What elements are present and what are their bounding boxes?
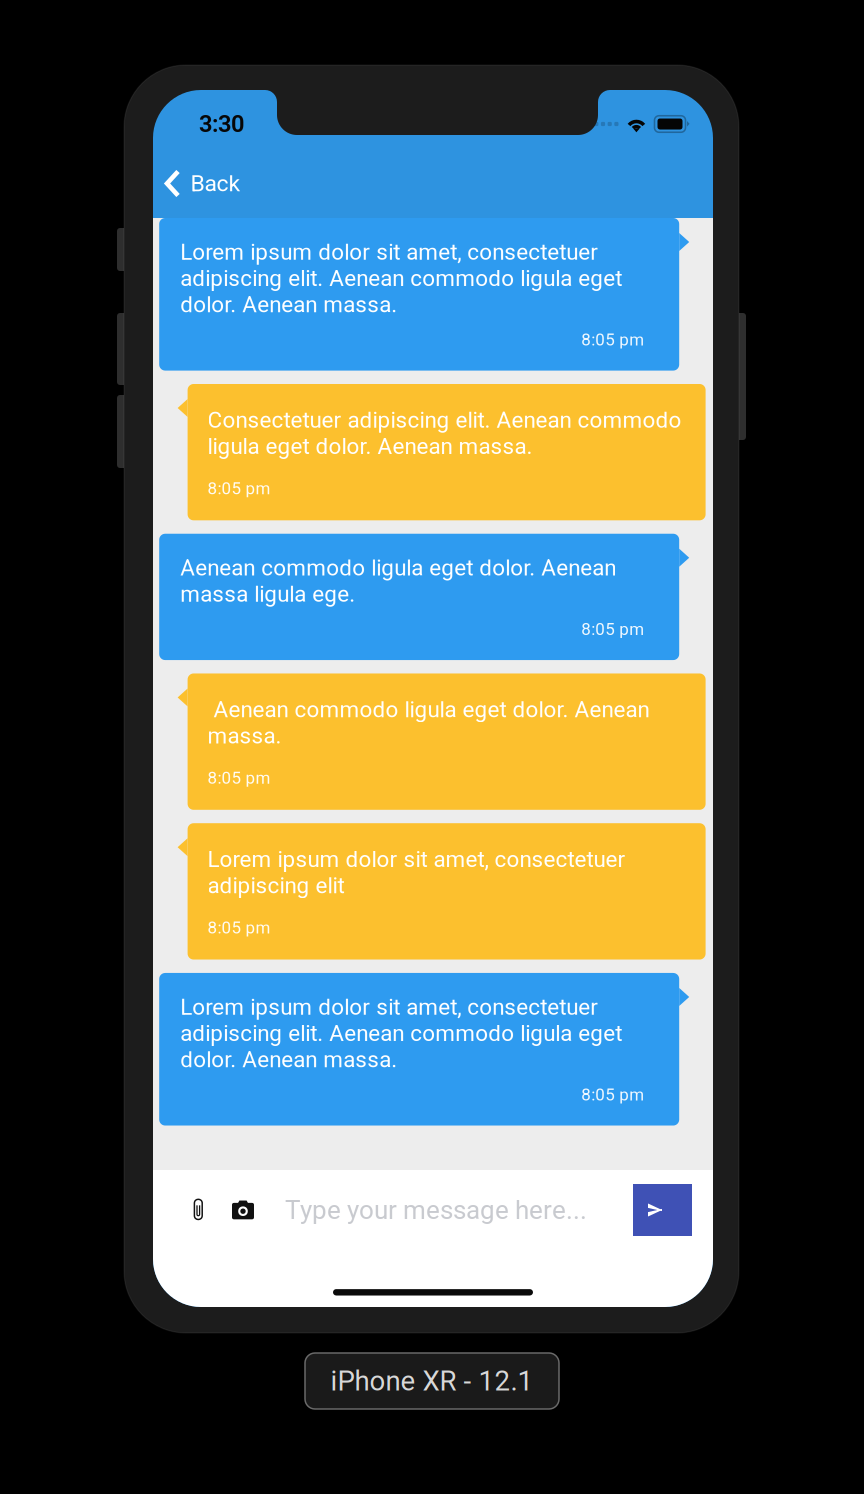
staticText: 8:05 pm (581, 619, 644, 639)
staticText: Back (190, 170, 240, 197)
staticText: 8:05 pm (581, 330, 644, 349)
staticText: iPhone XR - 12.1 (330, 1365, 533, 1397)
staticText: 8:05 pm (208, 768, 271, 788)
staticText: 3:30 (199, 110, 244, 138)
staticText: Aenean commodo ligula eget dolor. Aenean… (180, 555, 616, 607)
button[interactable]: Back (153, 158, 713, 218)
button[interactable]: Type your message here... (265, 1184, 633, 1236)
staticText: Aenean commodo ligula eget dolor. Aenean… (208, 696, 650, 749)
staticText: Type your message here... (285, 1195, 587, 1225)
button[interactable]: Send (633, 1184, 692, 1236)
button[interactable]: Attach file (180, 1184, 217, 1236)
staticText: Lorem ipsum dolor sit amet, consectetuer… (208, 846, 626, 899)
staticText: 8:05 pm (208, 478, 271, 498)
staticText: Lorem ipsum dolor sit amet, consectetuer… (180, 239, 622, 318)
button[interactable]: Take photo (221, 1184, 265, 1236)
staticText: Consectetuer adipiscing elit. Aenean com… (208, 407, 682, 459)
staticText: 8:05 pm (208, 918, 271, 937)
staticText: 8:05 pm (581, 1085, 644, 1104)
staticText: Lorem ipsum dolor sit amet, consectetuer… (180, 994, 622, 1073)
